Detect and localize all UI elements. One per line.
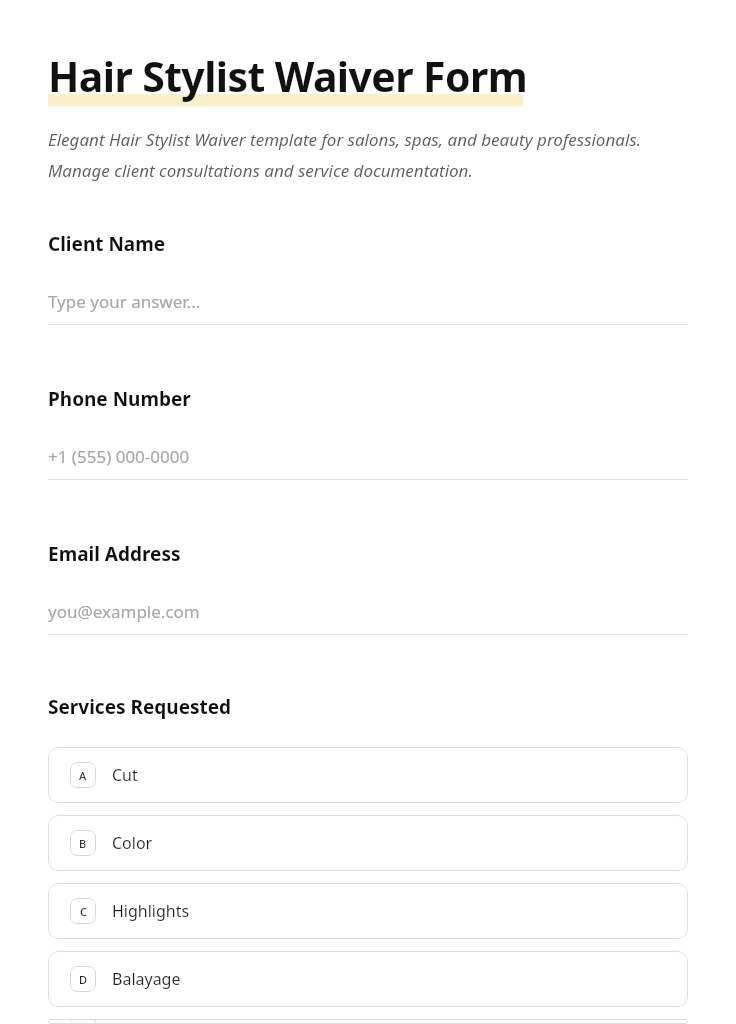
staticText: you@example.com (48, 600, 200, 623)
button[interactable]: C (48, 883, 688, 939)
staticText: Services Requested (48, 694, 232, 720)
staticText: Client Name (48, 231, 166, 257)
button[interactable]: +1 (555) 000-0000 (48, 445, 688, 480)
staticText: Cut (112, 764, 138, 786)
button[interactable]: D (48, 951, 688, 1007)
staticText: Highlights (112, 900, 190, 922)
staticText: E (80, 1019, 87, 1024)
staticText: Balayage (112, 968, 181, 990)
staticText: A (79, 768, 87, 783)
staticText: +1 (555) 000-0000 (48, 445, 190, 468)
button[interactable]: B (48, 815, 688, 871)
staticText: Type your answer... (48, 290, 201, 313)
button[interactable]: you@example.com (48, 600, 688, 635)
staticText: Email Address (48, 541, 181, 567)
staticText: C (80, 904, 87, 919)
staticText: Elegant Hair Stylist Waiver template for… (48, 128, 688, 182)
staticText: Color (112, 832, 153, 854)
staticText: Hair Stylist Waiver Form (48, 48, 528, 104)
staticText: Phone Number (48, 386, 191, 412)
button[interactable]: E (48, 1019, 688, 1024)
button[interactable]: A (48, 747, 688, 803)
staticText: B (79, 836, 87, 851)
staticText: D (79, 972, 88, 987)
staticText: Treatment (112, 1019, 190, 1024)
button[interactable]: Type your answer... (48, 290, 688, 325)
